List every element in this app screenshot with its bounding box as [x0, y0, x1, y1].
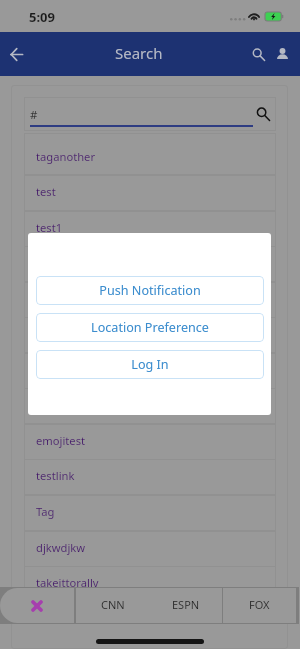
button[interactable]: Close tab	[0, 588, 74, 623]
button[interactable]: test1	[24, 211, 276, 247]
button[interactable]: newtag	[24, 388, 276, 424]
staticText: other	[36, 326, 65, 341]
staticText: CNN	[101, 597, 125, 612]
button[interactable]: Back	[2, 32, 31, 76]
staticText: Push Notification	[99, 282, 201, 299]
button[interactable]: CNN	[76, 588, 149, 623]
staticText: Log In	[131, 356, 169, 373]
button[interactable]: thing	[24, 282, 276, 318]
button[interactable]: sample	[24, 246, 276, 282]
button[interactable]: Location Preference	[36, 313, 264, 342]
button[interactable]: Account	[270, 32, 294, 76]
staticText: thing	[36, 291, 64, 306]
button[interactable]: Push Notification	[36, 276, 264, 305]
button[interactable]: takeittorally	[24, 566, 276, 602]
staticText: 5:09	[29, 8, 55, 26]
staticText: takeittorally	[36, 575, 99, 590]
staticText: testlink	[36, 468, 75, 483]
button[interactable]: other	[24, 317, 276, 353]
staticText: djkwdjkw	[36, 540, 86, 555]
staticText: #	[30, 107, 38, 123]
staticText: Search	[115, 43, 163, 63]
staticText: Tag	[36, 504, 55, 519]
button[interactable]: Log In	[36, 350, 264, 379]
staticText: ESPN	[172, 597, 200, 612]
staticText: mytag	[36, 362, 70, 377]
button[interactable]: ESPN	[149, 588, 222, 623]
button[interactable]: djkwdjkw	[24, 531, 276, 567]
button[interactable]: Submit search	[250, 101, 275, 127]
staticText: emojitest	[36, 433, 86, 448]
button[interactable]: Tag	[24, 495, 276, 531]
staticText: FOX	[249, 597, 270, 612]
button[interactable]: mytag	[24, 353, 276, 389]
button[interactable]: testlink	[24, 459, 276, 495]
staticText: test	[36, 184, 56, 199]
button[interactable]: Search	[245, 32, 271, 76]
staticText: Location Preference	[91, 319, 209, 336]
button[interactable]: emojitest	[24, 424, 276, 460]
button[interactable]: taganother	[24, 133, 276, 175]
button[interactable]: test	[24, 175, 276, 211]
staticText: taganother	[36, 149, 96, 164]
staticText: test1	[36, 220, 63, 235]
button[interactable]: FOX	[223, 588, 296, 623]
